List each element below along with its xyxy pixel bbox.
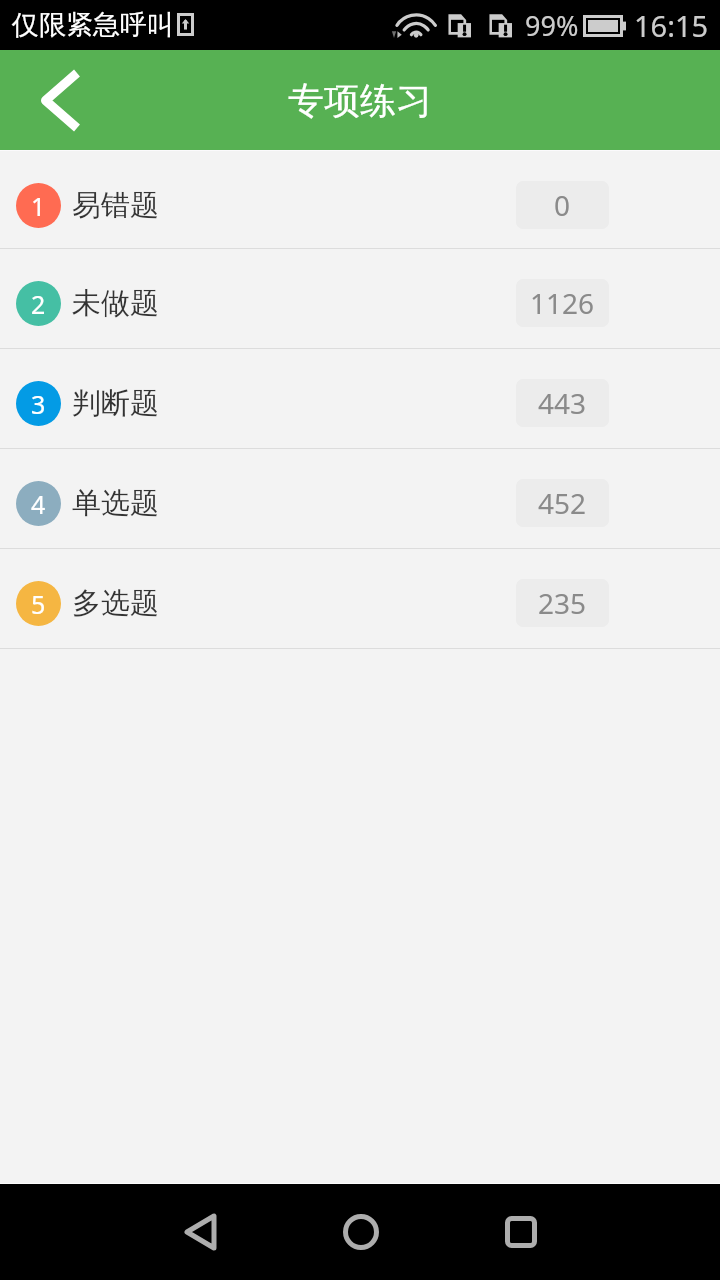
staticText: 多选题 <box>72 585 159 622</box>
button[interactable]: 1 <box>0 151 720 249</box>
staticText: 单选题 <box>72 485 159 522</box>
staticText: 专项练习 <box>288 78 432 123</box>
staticText: 3 <box>31 387 46 421</box>
staticText: 0 <box>554 186 571 224</box>
staticText: 易错题 <box>72 187 159 224</box>
staticText: 443 <box>538 384 587 422</box>
button[interactable]: 3 <box>0 349 720 449</box>
button[interactable]: Back <box>160 1192 240 1272</box>
staticText: 452 <box>538 484 587 522</box>
staticText: 未做题 <box>72 285 159 322</box>
staticText: 235 <box>538 584 587 622</box>
button[interactable]: Home <box>321 1192 401 1272</box>
staticText: 仅限紧急呼叫 <box>12 8 174 42</box>
staticText: 16:15 <box>634 6 709 45</box>
staticText: 5 <box>31 587 46 621</box>
staticText: 4 <box>31 487 46 521</box>
button[interactable]: 4 <box>0 449 720 549</box>
button[interactable]: Back <box>0 50 120 150</box>
staticText: 1 <box>31 189 46 223</box>
staticText: 2 <box>31 287 46 321</box>
staticText: 99% <box>525 7 579 44</box>
button[interactable]: 2 <box>0 249 720 349</box>
button[interactable]: Recents <box>481 1192 561 1272</box>
staticText: 判断题 <box>72 385 159 422</box>
button[interactable]: 5 <box>0 549 720 649</box>
staticText: 1126 <box>530 284 595 322</box>
